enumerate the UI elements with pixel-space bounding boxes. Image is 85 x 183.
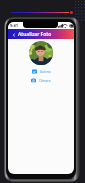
- staticText: Atualizar Foto: [18, 31, 52, 38]
- staticText: Câmera: [39, 79, 51, 83]
- button[interactable]: Galeria: [32, 69, 51, 74]
- button[interactable]: Câmera: [31, 78, 51, 83]
- staticText: Galeria: [40, 70, 51, 74]
- button[interactable]: Voltar: [10, 31, 17, 38]
- staticText: 9:41: [10, 23, 18, 28]
